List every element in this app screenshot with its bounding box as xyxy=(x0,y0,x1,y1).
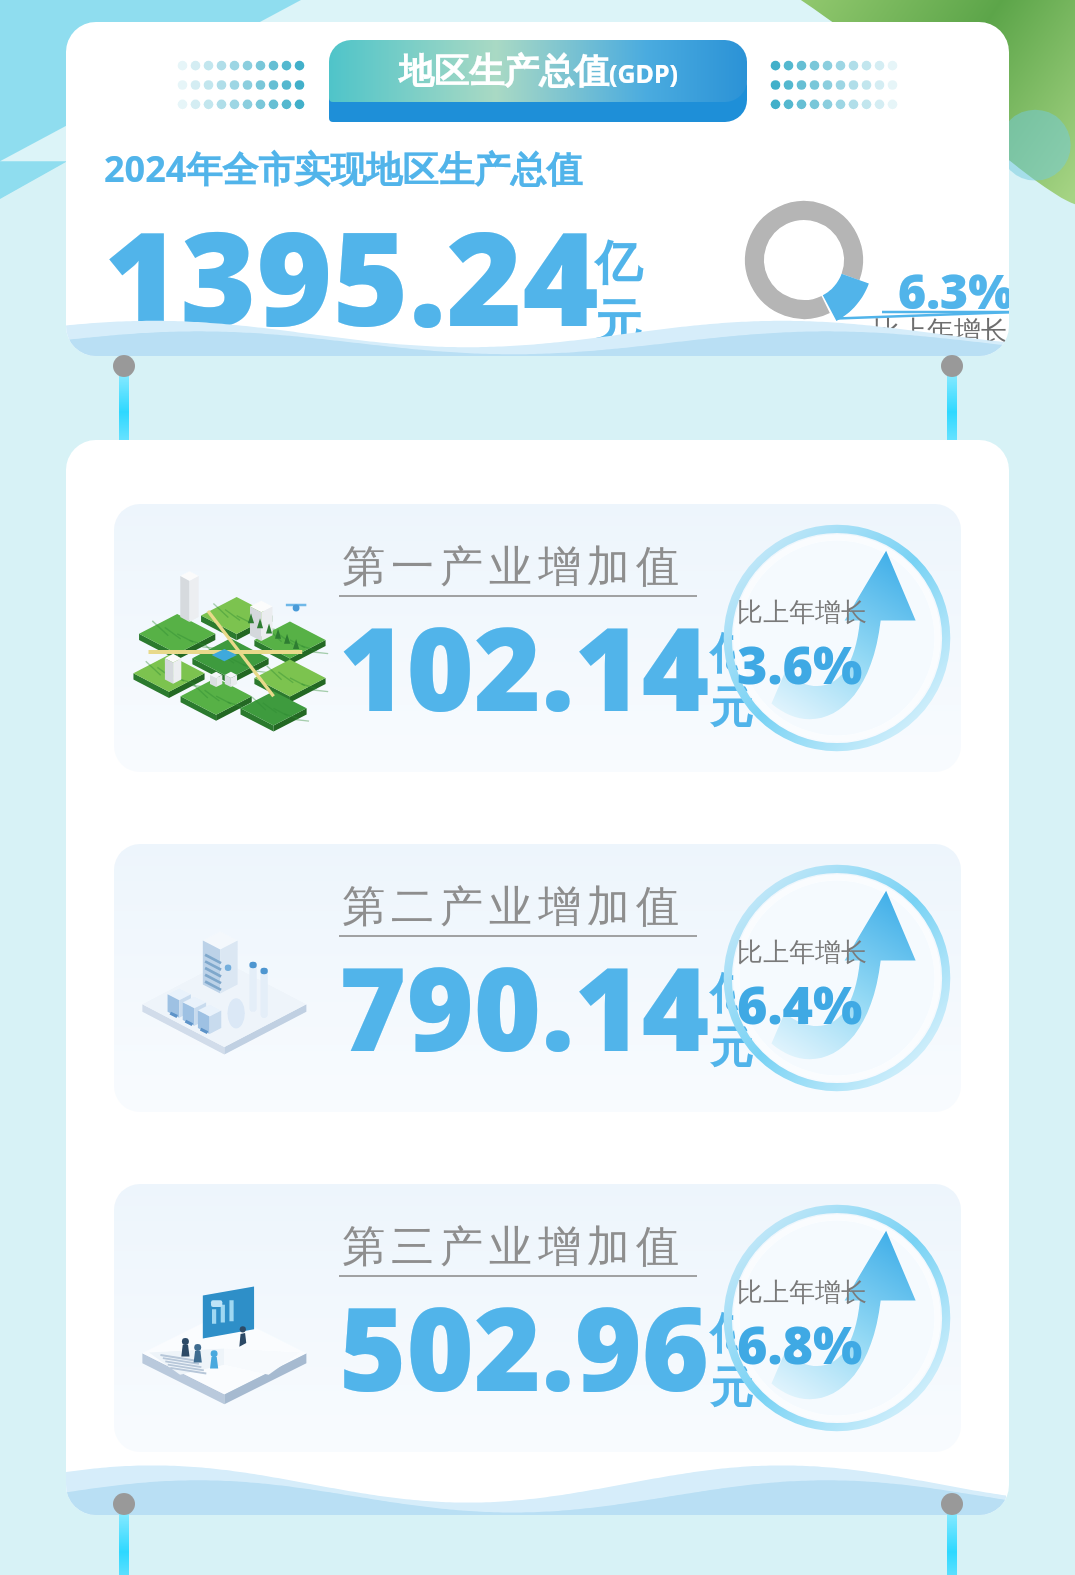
other: Connector xyxy=(941,1493,963,1575)
staticText: 第三产业增加值 xyxy=(339,1220,682,1274)
staticText: 6.8% xyxy=(737,1308,863,1379)
staticText: 亿 xyxy=(710,1307,753,1361)
button[interactable]: 第二产业增加值 xyxy=(114,844,961,1112)
staticText: 102.14 xyxy=(339,588,710,745)
staticText: 元 xyxy=(710,681,753,735)
staticText: 地区生产总值 xyxy=(399,49,609,93)
staticText: 元 xyxy=(710,1021,753,1075)
staticText: 元 xyxy=(595,293,642,352)
staticText: 第一产业增加值 xyxy=(339,540,682,594)
other: Connector xyxy=(113,1493,135,1575)
staticText: 第二产业增加值 xyxy=(339,880,682,934)
staticText: 3.6% xyxy=(737,628,863,699)
staticText: 元 xyxy=(710,1361,753,1415)
staticText: 比上年增长 xyxy=(873,314,1008,348)
staticText: 亿 xyxy=(710,627,753,681)
staticText: 6.4% xyxy=(737,968,863,1039)
staticText: 比上年增长 xyxy=(737,936,867,969)
staticText: 比上年增长 xyxy=(737,596,867,629)
staticText: 亿 xyxy=(595,234,642,293)
button[interactable]: 第一产业增加值 xyxy=(114,504,961,772)
other: Connector xyxy=(113,355,135,469)
button[interactable]: 第三产业增加值 xyxy=(114,1184,961,1452)
staticText: 2024年全市实现地区生产总值 xyxy=(104,144,583,193)
staticText: (GDP) xyxy=(609,56,678,90)
staticText: 790.14 xyxy=(339,928,710,1085)
staticText: 比上年增长 xyxy=(737,1276,867,1309)
staticText: 6.3% xyxy=(898,258,1009,323)
staticText: 502.96 xyxy=(339,1268,710,1425)
staticText: 亿 xyxy=(710,967,753,1021)
other: Connector xyxy=(941,355,963,469)
button[interactable]: 地区生产总值 xyxy=(329,40,747,122)
staticText: 1395.24 xyxy=(104,187,599,356)
